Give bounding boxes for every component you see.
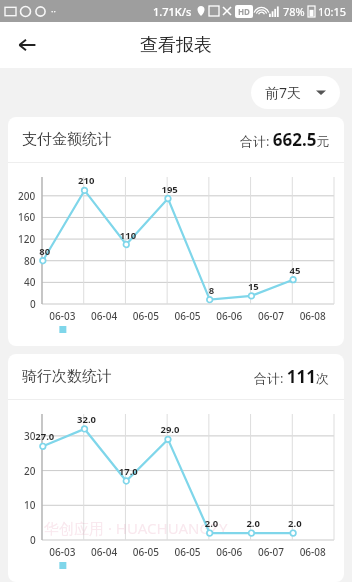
staticText: 查看报表 (140, 34, 212, 57)
staticText: ·· (51, 5, 56, 17)
staticText: 合计: 111次 (254, 365, 330, 388)
staticText: 合计: 662.5元 (240, 128, 330, 151)
staticText: 78% (283, 4, 305, 19)
staticText: 支付金额统计 (22, 130, 112, 149)
button[interactable]: 前7天 (251, 76, 340, 109)
button[interactable]: 返回 (8, 26, 46, 64)
staticText: 骑行次数统计 (22, 367, 112, 386)
staticText: 10:15 (318, 4, 347, 19)
staticText: HD (238, 6, 250, 17)
staticText: 1.71K/s (153, 4, 192, 19)
staticText: 前7天 (265, 83, 302, 102)
